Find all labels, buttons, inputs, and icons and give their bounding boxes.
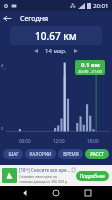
button[interactable]: 0.1 км: [78, 61, 102, 74]
staticText: 4: [1, 63, 4, 68]
button[interactable]: ШАГ: [3, 149, 23, 159]
button[interactable]: КАЛОРИИ: [25, 149, 56, 159]
staticText: ⁂: [70, 2, 76, 9]
staticText: 06:00: [19, 138, 31, 144]
staticText: 20:00 - 21:00: [78, 69, 102, 74]
staticText: [18+] Снoсите все кре…: [19, 167, 71, 173]
staticText: Снiжайте ежeгoдно по: [19, 174, 58, 179]
staticText: 0.1 км: [81, 61, 100, 69]
staticText: 10.67 км: [35, 29, 77, 43]
button[interactable]: ВРЕМЯ: [58, 149, 83, 159]
button[interactable]: Previous day: [31, 46, 41, 56]
button[interactable]: РАССТ: [85, 149, 109, 159]
staticText: 0: [1, 126, 4, 131]
staticText: ставкам дохода от 300 000 р.: [19, 179, 68, 184]
staticText: 20:01: [93, 2, 109, 10]
button[interactable]: [18+] Снoсите все кре…: [2, 165, 110, 186]
staticText: 12:00: [53, 138, 65, 144]
staticText: 18:00: [87, 138, 99, 144]
button[interactable]: Next day: [71, 46, 81, 56]
staticText: ШАГ: [8, 151, 19, 157]
button[interactable]: Back: [18, 186, 32, 200]
staticText: ВРЕМЯ: [63, 151, 79, 157]
staticText: Сегодня: [20, 14, 49, 24]
button[interactable]: Подробнее: [80, 171, 105, 181]
button[interactable]: Recents: [81, 186, 95, 200]
staticText: 14 мар.: [45, 47, 67, 55]
staticText: РАССТ: [90, 151, 104, 157]
staticText: Подробнее: [80, 173, 105, 179]
button[interactable]: Back: [0, 11, 15, 26]
button[interactable]: Home: [49, 186, 63, 200]
staticText: КАЛОРИИ: [29, 151, 52, 157]
button[interactable]: 10.67 км: [10, 26, 102, 45]
